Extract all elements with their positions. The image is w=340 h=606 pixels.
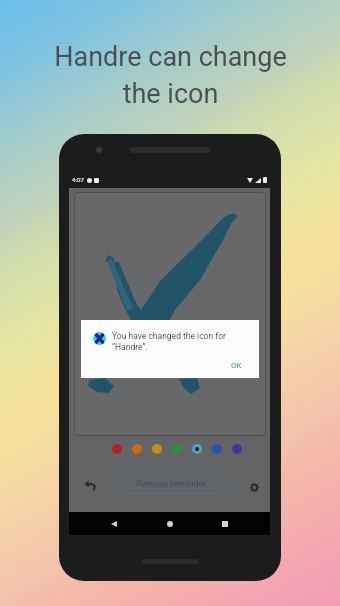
button[interactable] — [147, 441, 167, 457]
button[interactable] — [127, 441, 147, 457]
button[interactable] — [207, 441, 227, 457]
button[interactable]: Recents — [214, 513, 236, 535]
button[interactable] — [227, 441, 247, 457]
button[interactable]: Back — [103, 513, 125, 535]
button[interactable]: Settings — [243, 476, 265, 498]
staticText: You have changed the icon for “Handre”. — [112, 331, 226, 352]
staticText: OK — [231, 361, 242, 370]
staticText: Remove reminder — [136, 479, 207, 490]
button[interactable]: Home — [159, 513, 181, 535]
button[interactable]: OK — [231, 361, 242, 370]
staticText: Handre can change the icon — [54, 41, 287, 109]
button[interactable] — [187, 441, 207, 457]
button[interactable] — [107, 441, 127, 457]
button[interactable]: Remove reminder — [112, 475, 230, 494]
staticText: 4:07 — [72, 176, 84, 184]
button[interactable]: Undo — [78, 473, 100, 495]
button[interactable] — [167, 441, 187, 457]
